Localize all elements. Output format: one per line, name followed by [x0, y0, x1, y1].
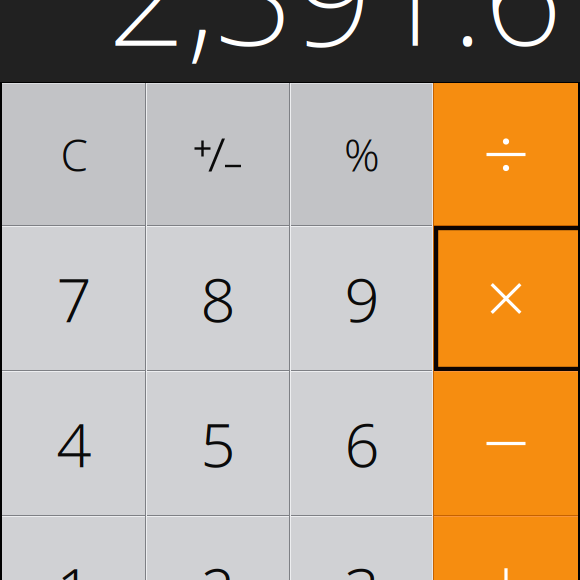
button[interactable]: 2: [146, 516, 290, 580]
button[interactable]: %: [290, 83, 434, 226]
staticText: 2,391.6: [107, 0, 562, 84]
staticText: 1: [56, 548, 91, 580]
staticText: 5: [200, 403, 235, 484]
staticText: %: [344, 125, 380, 184]
staticText: 7: [56, 258, 91, 339]
staticText: 4: [56, 403, 91, 484]
staticText: C: [60, 125, 87, 184]
staticText: 2: [200, 548, 235, 580]
button[interactable]: [434, 226, 578, 371]
staticText: 9: [344, 258, 379, 339]
button[interactable]: 4: [2, 371, 146, 516]
button[interactable]: C: [2, 83, 146, 226]
button[interactable]: 9: [290, 226, 434, 371]
staticText: 8: [200, 258, 235, 339]
button[interactable]: [434, 371, 578, 516]
button[interactable]: 3: [290, 516, 434, 580]
button[interactable]: 8: [146, 226, 290, 371]
button[interactable]: 1: [2, 516, 146, 580]
button[interactable]: [146, 83, 290, 226]
button[interactable]: 7: [2, 226, 146, 371]
staticText: 3: [344, 548, 379, 580]
button[interactable]: [434, 516, 578, 580]
button[interactable]: 6: [290, 371, 434, 516]
button[interactable]: [434, 83, 578, 226]
staticText: 6: [344, 403, 379, 484]
button[interactable]: 5: [146, 371, 290, 516]
